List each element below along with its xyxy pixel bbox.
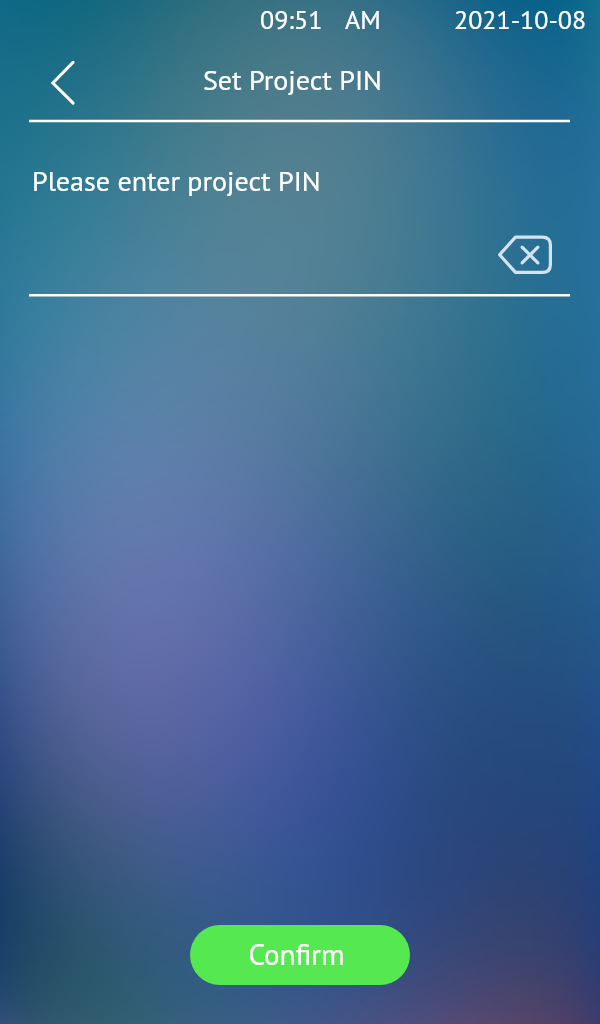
button[interactable]: Back — [40, 55, 86, 111]
staticText: Please enter project PIN — [32, 162, 321, 198]
staticText: Set Project PIN — [203, 61, 382, 97]
staticText: 09:51 — [260, 3, 323, 37]
button[interactable]: Confirm — [190, 925, 410, 985]
staticText: AM — [345, 3, 381, 37]
staticText: Confirm — [248, 935, 345, 973]
button[interactable]: Backspace — [486, 226, 564, 284]
staticText: 2021-10-08 — [454, 3, 587, 37]
